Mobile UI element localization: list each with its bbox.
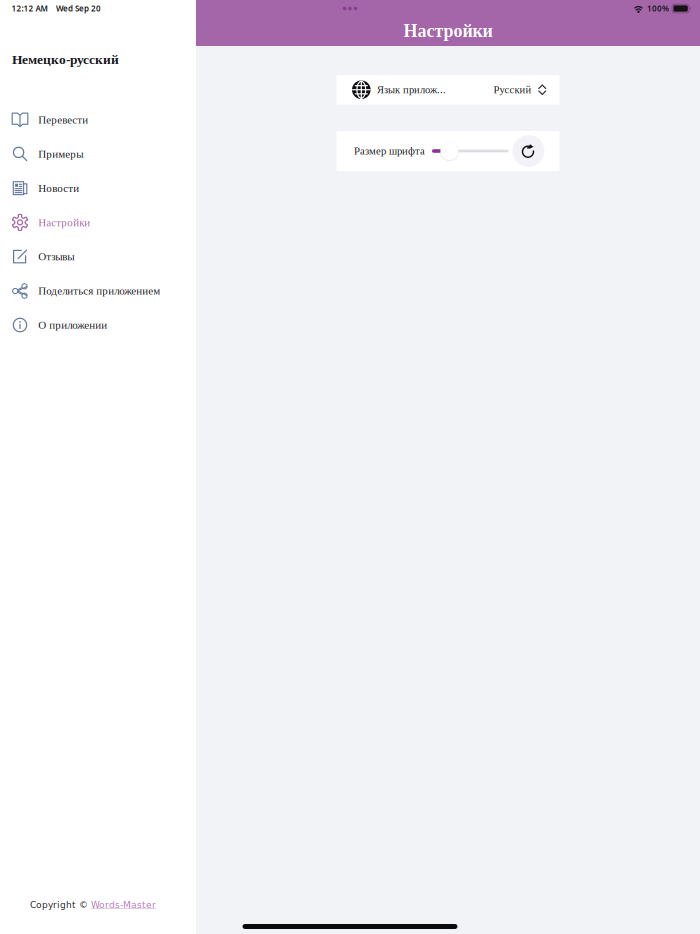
- button[interactable]: Настройки: [0, 205, 196, 239]
- staticText: Настройки: [38, 216, 90, 228]
- button[interactable]: Новости: [0, 171, 196, 205]
- staticText: Настройки: [403, 21, 492, 41]
- staticText: Words-Master: [91, 899, 156, 910]
- button[interactable]: Язык прилож...: [336, 75, 559, 104]
- staticText: Немецко-русский: [12, 52, 119, 67]
- staticText: Русский: [494, 84, 532, 96]
- button[interactable]: Отзывы: [0, 239, 196, 274]
- button[interactable]: О приложении: [0, 308, 196, 342]
- staticText: Перевести: [38, 114, 88, 126]
- staticText: О приложении: [38, 319, 107, 331]
- staticText: Copyright ©: [30, 899, 91, 910]
- staticText: Язык прилож...: [377, 84, 446, 96]
- staticText: 100%: [647, 3, 669, 14]
- staticText: Wed Sep 20: [56, 3, 101, 14]
- button[interactable]: Поделиться приложением: [0, 274, 196, 308]
- staticText: Новости: [38, 182, 79, 194]
- staticText: 12:12 AM: [11, 3, 47, 14]
- staticText: Отзывы: [38, 250, 74, 263]
- staticText: Поделиться приложением: [38, 285, 160, 297]
- button[interactable]: Words-Master: [91, 899, 156, 910]
- button[interactable]: Примеры: [0, 137, 196, 171]
- button[interactable]: Reset font size: [512, 135, 544, 167]
- button[interactable]: Перевести: [0, 103, 196, 137]
- staticText: Размер шрифта: [354, 145, 425, 157]
- staticText: Примеры: [38, 148, 83, 160]
